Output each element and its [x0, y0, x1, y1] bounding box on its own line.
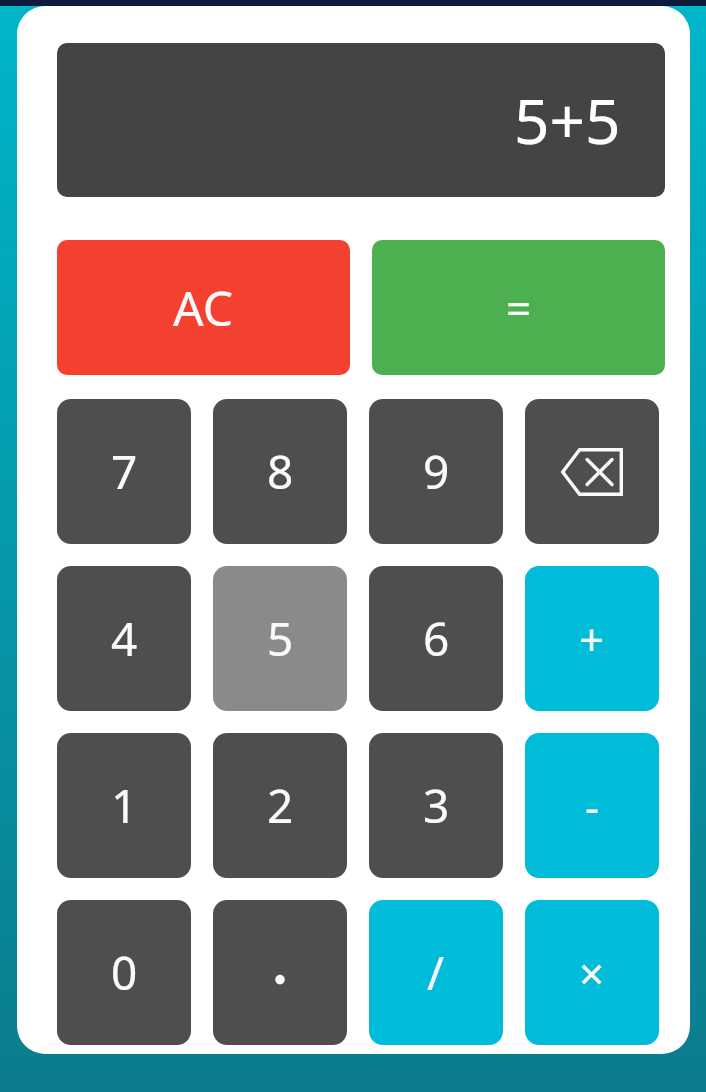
button[interactable]: × [525, 900, 659, 1045]
staticText: / [427, 941, 445, 1004]
button[interactable]: Backspace [525, 399, 659, 544]
staticText: = [506, 278, 532, 338]
button[interactable]: = [372, 240, 665, 375]
staticText: 1 [111, 774, 138, 837]
button[interactable]: 7 [57, 399, 191, 544]
button[interactable]: Decimal point [213, 900, 347, 1045]
button[interactable]: AC [57, 240, 350, 375]
button[interactable]: 4 [57, 566, 191, 711]
staticText: 9 [423, 440, 450, 503]
staticText: 6 [423, 607, 450, 670]
button[interactable]: 6 [369, 566, 503, 711]
staticText: AC [173, 275, 234, 340]
button[interactable]: + [525, 566, 659, 711]
staticText: 7 [111, 440, 138, 503]
staticText: 3 [423, 774, 450, 837]
staticText: 4 [111, 607, 138, 670]
staticText: 8 [267, 440, 294, 503]
staticText: 5+5 [514, 78, 621, 162]
staticText: 5 [267, 607, 294, 670]
button[interactable]: 0 [57, 900, 191, 1045]
button[interactable]: - [525, 733, 659, 878]
staticText: 0 [111, 941, 138, 1004]
button[interactable]: 1 [57, 733, 191, 878]
staticText: × [579, 943, 605, 1003]
button[interactable]: 5 [213, 566, 347, 711]
staticText: - [585, 776, 600, 836]
staticText: 2 [267, 774, 294, 837]
button[interactable]: 9 [369, 399, 503, 544]
button[interactable]: / [369, 900, 503, 1045]
button[interactable]: 3 [369, 733, 503, 878]
button[interactable]: 5+5 [57, 43, 665, 197]
staticText: + [579, 609, 605, 669]
button[interactable]: 2 [213, 733, 347, 878]
button[interactable]: 8 [213, 399, 347, 544]
